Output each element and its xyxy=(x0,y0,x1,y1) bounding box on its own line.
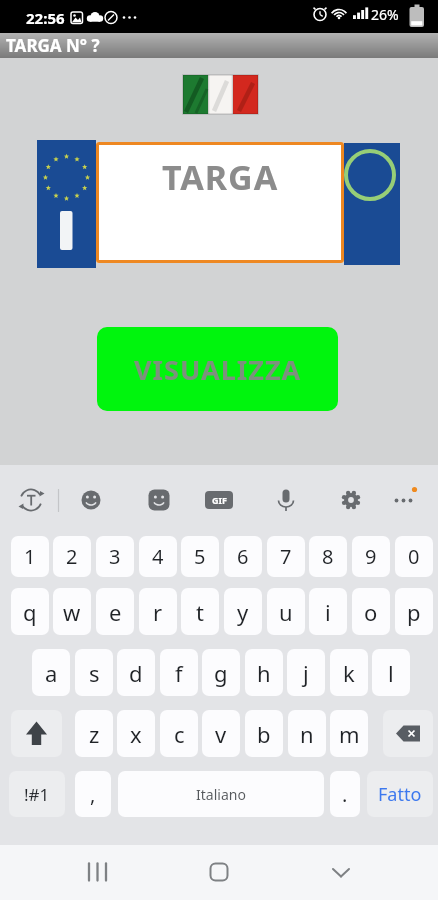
button[interactable]: i xyxy=(309,588,347,635)
button[interactable]: w xyxy=(53,588,91,635)
button[interactable]: 6 xyxy=(224,536,262,577)
button[interactable] xyxy=(11,710,62,757)
button[interactable]: 8 xyxy=(309,536,347,577)
staticText: VISUALIZZA xyxy=(134,351,302,388)
staticText: 22:56 xyxy=(26,8,65,28)
staticText: h xyxy=(257,658,271,688)
button[interactable]: x xyxy=(117,710,155,757)
staticText: u xyxy=(279,597,293,627)
button[interactable]: v xyxy=(202,710,240,757)
button[interactable]: p xyxy=(395,588,433,635)
staticText: x xyxy=(130,719,142,749)
staticText: j xyxy=(303,658,309,688)
staticText: w xyxy=(63,597,81,627)
button[interactable]: a xyxy=(32,649,70,696)
staticText: , xyxy=(90,781,96,808)
staticText: Fatto xyxy=(378,782,422,807)
staticText: 3 xyxy=(109,543,121,570)
staticText: TARGA N° ? xyxy=(6,34,100,57)
staticText: e xyxy=(109,597,122,627)
staticText: p xyxy=(407,597,421,627)
button[interactable]: 9 xyxy=(352,536,390,577)
button[interactable]: 4 xyxy=(139,536,177,577)
staticText: q xyxy=(23,597,37,627)
staticText: 6 xyxy=(237,543,249,570)
staticText: g xyxy=(214,658,228,688)
button[interactable]: Italiano xyxy=(118,771,324,817)
staticText: TARGA xyxy=(162,154,279,200)
staticText: m xyxy=(339,719,360,749)
staticText: c xyxy=(174,719,185,749)
button[interactable]: m xyxy=(330,710,368,757)
button[interactable]: l xyxy=(372,649,410,696)
staticText: o xyxy=(364,597,378,627)
staticText: t xyxy=(196,597,204,627)
staticText: . xyxy=(342,781,348,808)
staticText: GIF xyxy=(212,494,227,506)
staticText: 0 xyxy=(408,543,420,570)
button[interactable]: g xyxy=(202,649,240,696)
button[interactable]: c xyxy=(160,710,198,757)
button[interactable]: f xyxy=(160,649,198,696)
staticText: y xyxy=(237,597,249,627)
button[interactable]: n xyxy=(288,710,326,757)
button[interactable] xyxy=(383,710,433,757)
button[interactable]: b xyxy=(245,710,283,757)
staticText: b xyxy=(257,719,271,749)
staticText: a xyxy=(45,658,58,688)
staticText: d xyxy=(129,658,143,688)
button[interactable]: Fatto xyxy=(367,771,433,817)
button[interactable]: k xyxy=(330,649,368,696)
button[interactable]: , xyxy=(75,771,111,817)
staticText: z xyxy=(89,719,100,749)
button[interactable] xyxy=(96,142,344,263)
button[interactable]: z xyxy=(75,710,113,757)
button[interactable]: 0 xyxy=(395,536,433,577)
button[interactable]: e xyxy=(96,588,134,635)
staticText: 5 xyxy=(194,543,206,570)
staticText: v xyxy=(215,719,227,749)
button[interactable]: s xyxy=(75,649,113,696)
button[interactable]: y xyxy=(224,588,262,635)
staticText: 7 xyxy=(280,543,292,570)
button[interactable]: q xyxy=(11,588,49,635)
staticText: f xyxy=(175,658,183,688)
button[interactable]: r xyxy=(139,588,177,635)
staticText: 8 xyxy=(322,543,334,570)
staticText: 4 xyxy=(152,543,164,570)
staticText: Italiano xyxy=(196,785,246,804)
button[interactable]: j xyxy=(287,649,325,696)
button[interactable]: 7 xyxy=(267,536,305,577)
staticText: 2 xyxy=(66,543,78,570)
staticText: l xyxy=(388,658,394,688)
button[interactable]: u xyxy=(267,588,305,635)
button[interactable]: t xyxy=(181,588,219,635)
staticText: k xyxy=(343,658,355,688)
staticText: s xyxy=(89,658,100,688)
button[interactable]: d xyxy=(117,649,155,696)
button[interactable]: 3 xyxy=(96,536,134,577)
staticText: 26% xyxy=(371,5,399,24)
button[interactable]: 5 xyxy=(181,536,219,577)
button[interactable]: !#1 xyxy=(9,771,65,817)
button[interactable]: VISUALIZZA xyxy=(97,327,338,411)
button[interactable]: 1 xyxy=(11,536,49,577)
button[interactable]: o xyxy=(352,588,390,635)
staticText: !#1 xyxy=(24,783,50,806)
staticText: i xyxy=(325,597,331,627)
button[interactable]: h xyxy=(245,649,283,696)
staticText: 1 xyxy=(24,543,36,570)
staticText: n xyxy=(300,719,314,749)
staticText: 9 xyxy=(365,543,377,570)
staticText: r xyxy=(153,597,163,627)
button[interactable]: 2 xyxy=(53,536,91,577)
button[interactable]: . xyxy=(330,771,360,817)
